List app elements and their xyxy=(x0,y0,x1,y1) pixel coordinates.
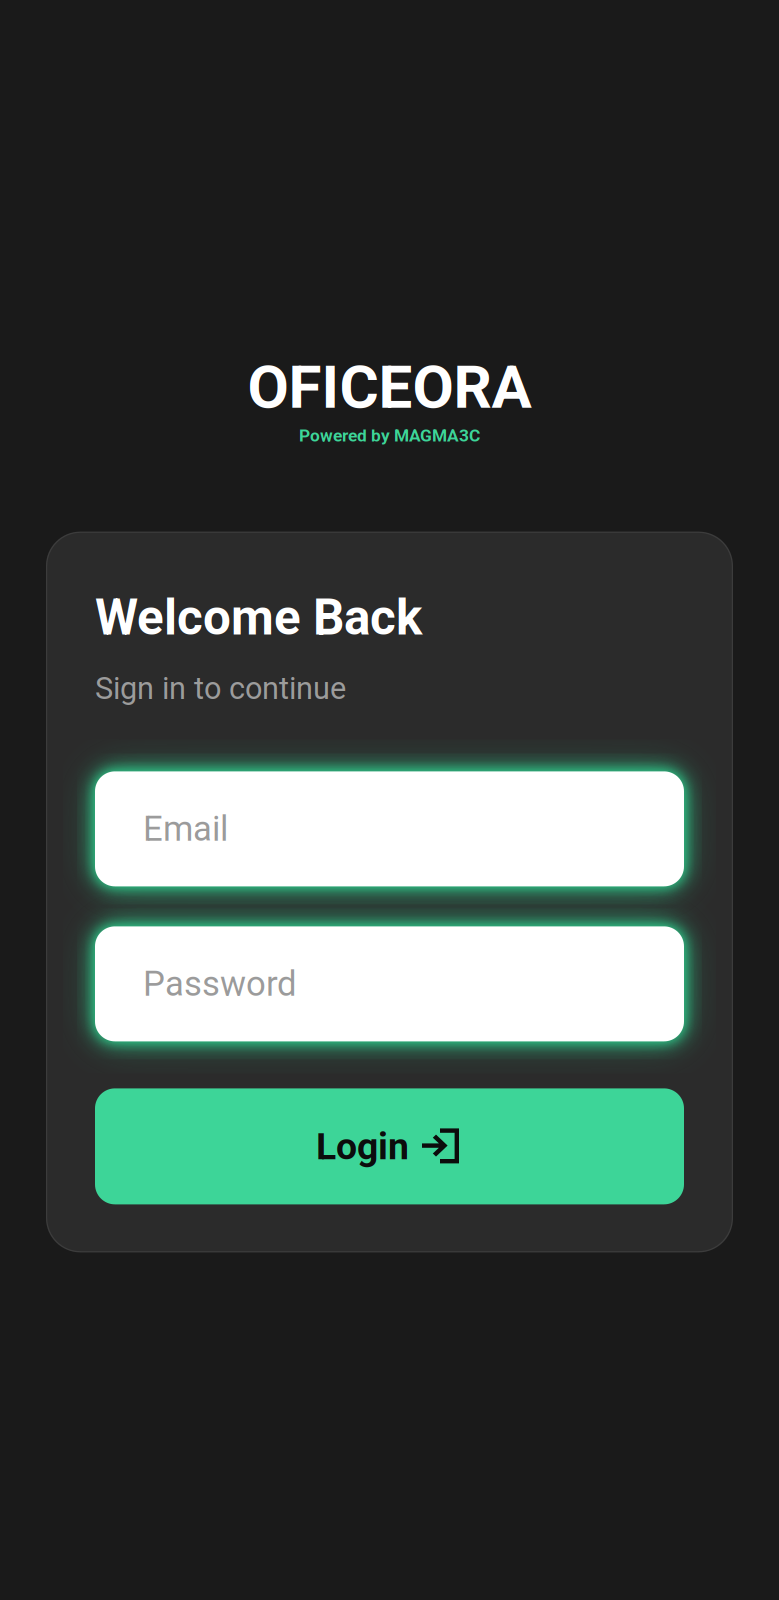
staticText: Login xyxy=(316,1124,409,1168)
staticText: Powered by MAGMA3C xyxy=(299,425,480,446)
staticText: Password xyxy=(143,964,297,1004)
staticText: Email xyxy=(143,809,228,849)
staticText: Sign in to continue xyxy=(95,670,346,706)
staticText: Welcome Back xyxy=(95,589,422,646)
staticText: OFICEORA xyxy=(247,352,531,422)
button[interactable]: Email xyxy=(95,771,684,886)
button[interactable]: Password xyxy=(95,926,684,1041)
button[interactable]: Login xyxy=(95,1088,684,1204)
